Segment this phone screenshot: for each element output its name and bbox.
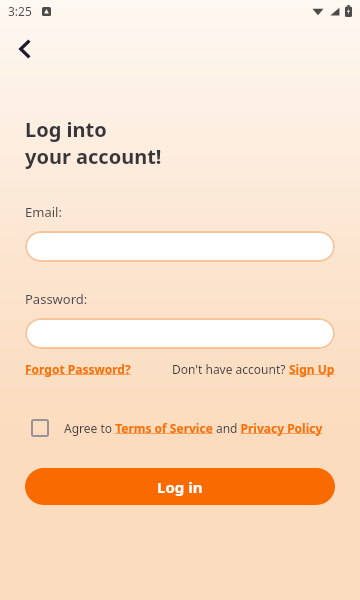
button[interactable]: Agree to Terms of Service and Privacy Po… [25, 419, 335, 437]
button[interactable]: Don't have account? [172, 361, 335, 377]
staticText: Email: [25, 203, 62, 221]
staticText: Password: [25, 290, 88, 308]
button[interactable] [25, 318, 335, 349]
staticText: 3:25 [8, 3, 32, 19]
staticText: Agree to Terms of Service and Privacy Po… [64, 420, 323, 436]
staticText: Sign Up [289, 361, 335, 377]
button[interactable] [25, 231, 335, 262]
button[interactable]: Forgot Password? [25, 361, 131, 377]
staticText: Log into [25, 116, 107, 143]
button[interactable]: Back [8, 32, 42, 66]
button[interactable]: Log in [25, 468, 335, 505]
staticText: Don't have account? [172, 361, 289, 377]
staticText: Log in [157, 477, 203, 497]
staticText: your account! [25, 143, 162, 170]
staticText: Forgot Password? [25, 361, 131, 377]
